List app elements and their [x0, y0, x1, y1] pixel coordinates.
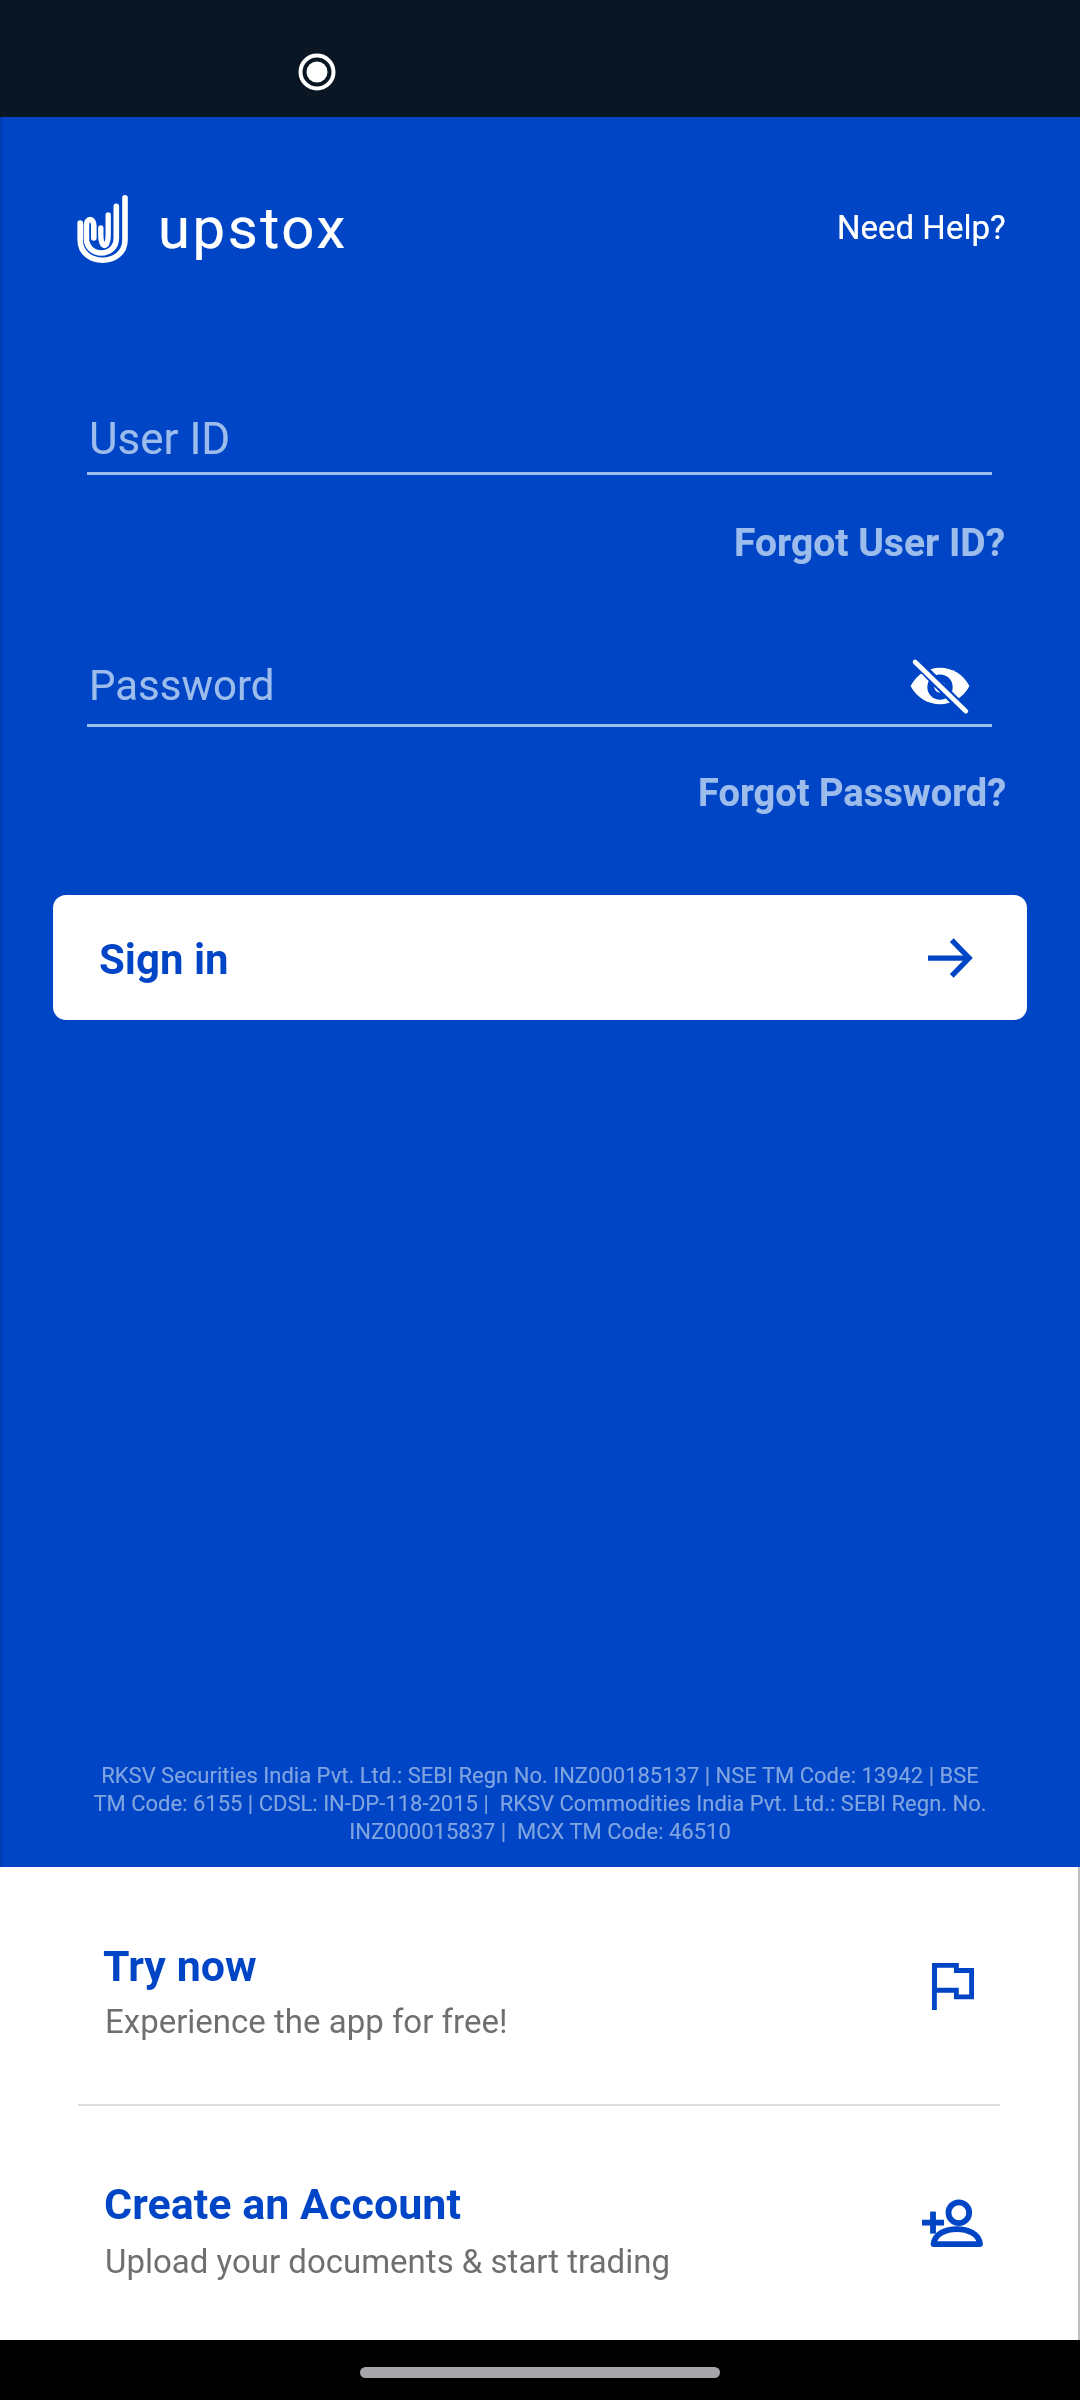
staticText: Sign in — [99, 935, 229, 984]
staticText: Forgot User ID? — [734, 520, 1006, 566]
staticText: Upload your documents & start trading — [105, 2242, 670, 2281]
button[interactable]: Show password — [896, 646, 984, 726]
button[interactable]: Create an Account — [0, 2106, 1080, 2340]
button[interactable]: Need Help? — [823, 200, 1020, 255]
button[interactable]: User ID — [87, 402, 992, 477]
button[interactable]: Try now — [0, 1867, 1080, 2104]
staticText: Experience the app for free! — [105, 2002, 508, 2041]
staticText: User ID — [89, 413, 231, 465]
button[interactable]: Forgot Password? — [684, 762, 1021, 825]
staticText: Password — [89, 661, 275, 710]
button[interactable]: Forgot User ID? — [720, 511, 1020, 575]
button[interactable]: Sign in — [53, 895, 1027, 1020]
staticText: Need Help? — [837, 208, 1006, 247]
staticText: Create an Account — [104, 2179, 461, 2229]
staticText: RKSV Securities India Pvt. Ltd.: SEBI Re… — [90, 1763, 990, 1845]
staticText: Try now — [103, 1941, 257, 1991]
staticText: upstox — [158, 194, 348, 262]
staticText: Forgot Password? — [698, 771, 1007, 816]
